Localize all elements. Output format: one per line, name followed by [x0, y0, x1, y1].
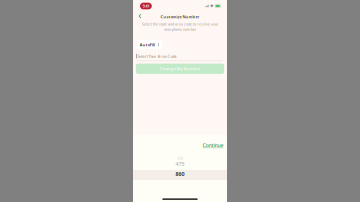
staticText: 9:41	[142, 3, 149, 9]
staticText: 860	[175, 170, 184, 178]
button[interactable]: Continue	[202, 142, 223, 149]
button[interactable]: AutoFill	[137, 40, 162, 49]
staticText: Select Your Area Code	[137, 53, 176, 59]
button[interactable]: Change My Number	[136, 64, 224, 74]
staticText: Change My Number	[159, 66, 200, 71]
staticText: AutoFill	[140, 42, 155, 47]
staticText: Customize Number	[160, 14, 199, 19]
button[interactable]: Back	[136, 12, 144, 20]
staticText: Select the state and area code to receiv…	[141, 21, 218, 32]
staticText: 475	[175, 160, 184, 168]
staticText: Continue	[202, 142, 223, 149]
staticText: 203	[177, 156, 183, 161]
